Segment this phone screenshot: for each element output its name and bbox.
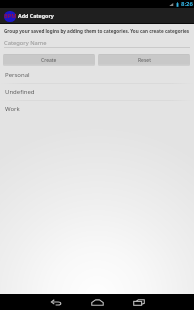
button[interactable]: Undefined xyxy=(0,84,194,101)
button[interactable]: Reset xyxy=(98,54,190,66)
staticText: 8:26 xyxy=(181,0,193,8)
button[interactable]: Recent apps xyxy=(124,294,153,310)
staticText: BPM xyxy=(4,12,17,20)
staticText: Reset xyxy=(138,57,151,64)
staticText: Undefined xyxy=(5,88,35,96)
button[interactable]: Work xyxy=(0,101,194,118)
staticText: Add Category xyxy=(18,12,54,19)
button[interactable]: Create xyxy=(3,54,95,66)
staticText: Group your saved logins by adding them t… xyxy=(4,28,192,34)
staticText: Work xyxy=(5,105,20,113)
staticText: Category Name xyxy=(4,39,47,47)
button[interactable]: Back xyxy=(42,294,71,310)
staticText: Personal xyxy=(5,71,30,79)
button[interactable]: Personal xyxy=(0,67,194,84)
staticText: Create xyxy=(41,57,57,64)
button[interactable]: Home xyxy=(83,294,112,310)
